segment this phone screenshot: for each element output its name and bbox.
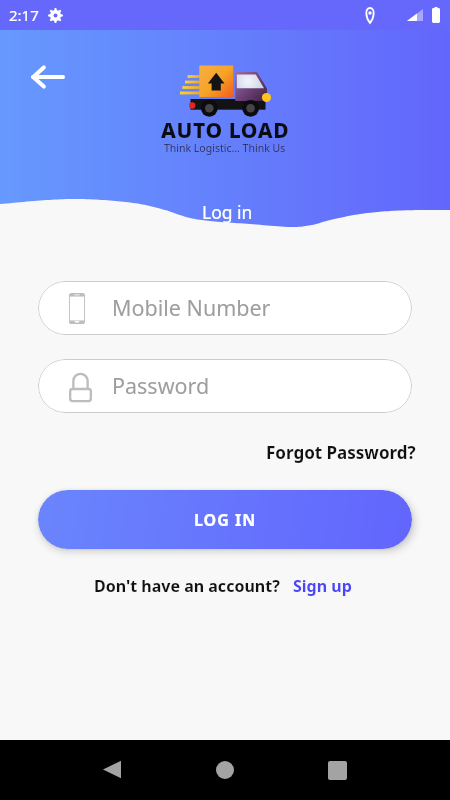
button[interactable]: Recents	[313, 746, 361, 794]
staticText: 2:17	[9, 5, 39, 25]
staticText: Mobile Number	[112, 293, 271, 322]
button[interactable]: Back	[87, 745, 135, 793]
staticText: LOG IN	[194, 509, 257, 531]
button[interactable]: Mobile Number	[38, 281, 412, 335]
button[interactable]: Home	[201, 746, 249, 794]
button[interactable]: Sign up	[293, 575, 352, 597]
staticText: AUTO LOAD	[161, 116, 290, 145]
staticText: Password	[112, 371, 210, 400]
staticText: Log in	[202, 200, 253, 224]
button[interactable]: LOG IN	[38, 490, 412, 549]
staticText: Don't have an account?	[94, 575, 280, 597]
button[interactable]: Back	[27, 57, 67, 97]
button[interactable]: Password	[38, 359, 412, 413]
staticText: Think Logistic... Think Us	[164, 141, 286, 155]
button[interactable]: Forgot Password?	[266, 441, 416, 464]
